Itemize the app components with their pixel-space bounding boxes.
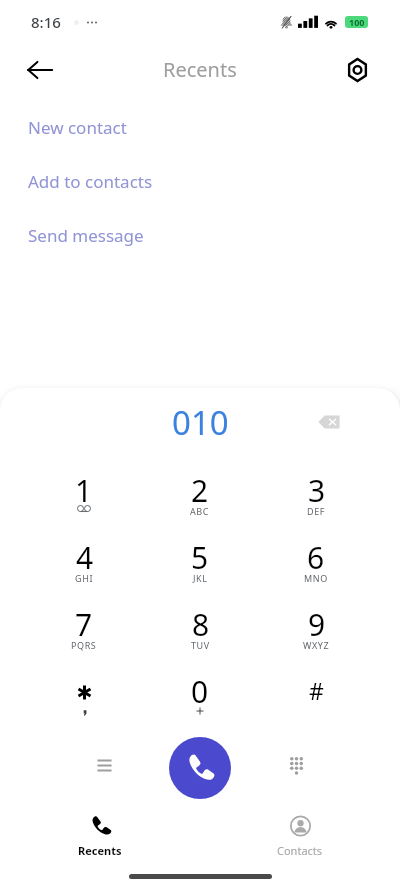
staticText: 1 (75, 470, 93, 511)
staticText: 8 (192, 604, 210, 645)
staticText: PQRS (71, 639, 97, 651)
staticText: 2 (191, 470, 209, 511)
staticText: 8:16 (31, 12, 61, 32)
staticText: Contacts (277, 843, 323, 858)
staticText: DEF (307, 505, 326, 517)
button[interactable]: Backspace (309, 402, 349, 442)
button[interactable]: 9 (258, 604, 374, 671)
button[interactable]: Contacts (200, 800, 400, 870)
staticText: 010 (172, 400, 229, 445)
staticText: 7 (75, 604, 93, 645)
button[interactable]: Call options (82, 743, 126, 787)
button[interactable]: Send message (0, 208, 400, 262)
staticText: 6 (307, 537, 325, 578)
button[interactable]: 3 (258, 470, 374, 537)
button[interactable]: 2 (142, 470, 258, 537)
staticText: GHI (75, 572, 94, 584)
staticText: Recents (163, 56, 237, 83)
staticText: # (309, 675, 324, 706)
button[interactable]: 5 (142, 537, 258, 604)
staticText: 4 (76, 537, 94, 578)
staticText: ABC (190, 505, 210, 517)
staticText: Recents (78, 843, 122, 858)
staticText: New contact (28, 116, 127, 139)
staticText: 9 (308, 604, 326, 645)
button[interactable] (26, 671, 142, 738)
button[interactable]: Back (19, 49, 61, 91)
button[interactable]: New contact (0, 100, 400, 154)
staticText: 100 (349, 16, 365, 28)
staticText: Send message (28, 224, 144, 247)
staticText: TUV (191, 639, 210, 651)
button[interactable]: # (258, 671, 374, 738)
button[interactable]: 7 (26, 604, 142, 671)
staticText: WXYZ (303, 639, 330, 651)
button[interactable]: 6 (258, 537, 374, 604)
button[interactable]: 8 (142, 604, 258, 671)
button[interactable]: 0 (142, 671, 258, 738)
button[interactable]: Recents (0, 800, 200, 870)
staticText: 3 (308, 470, 326, 511)
button[interactable]: Call (169, 737, 231, 799)
staticText: JKL (193, 572, 208, 584)
staticText: Add to contacts (28, 170, 153, 193)
staticText: 5 (191, 537, 209, 578)
button[interactable]: Settings (336, 49, 378, 91)
staticText: 0 (191, 671, 209, 712)
button[interactable]: Add to contacts (0, 154, 400, 208)
button[interactable]: 1 (26, 470, 142, 537)
staticText: MNO (304, 572, 328, 584)
button[interactable]: Dialpad (274, 743, 318, 787)
button[interactable]: 4 (26, 537, 142, 604)
